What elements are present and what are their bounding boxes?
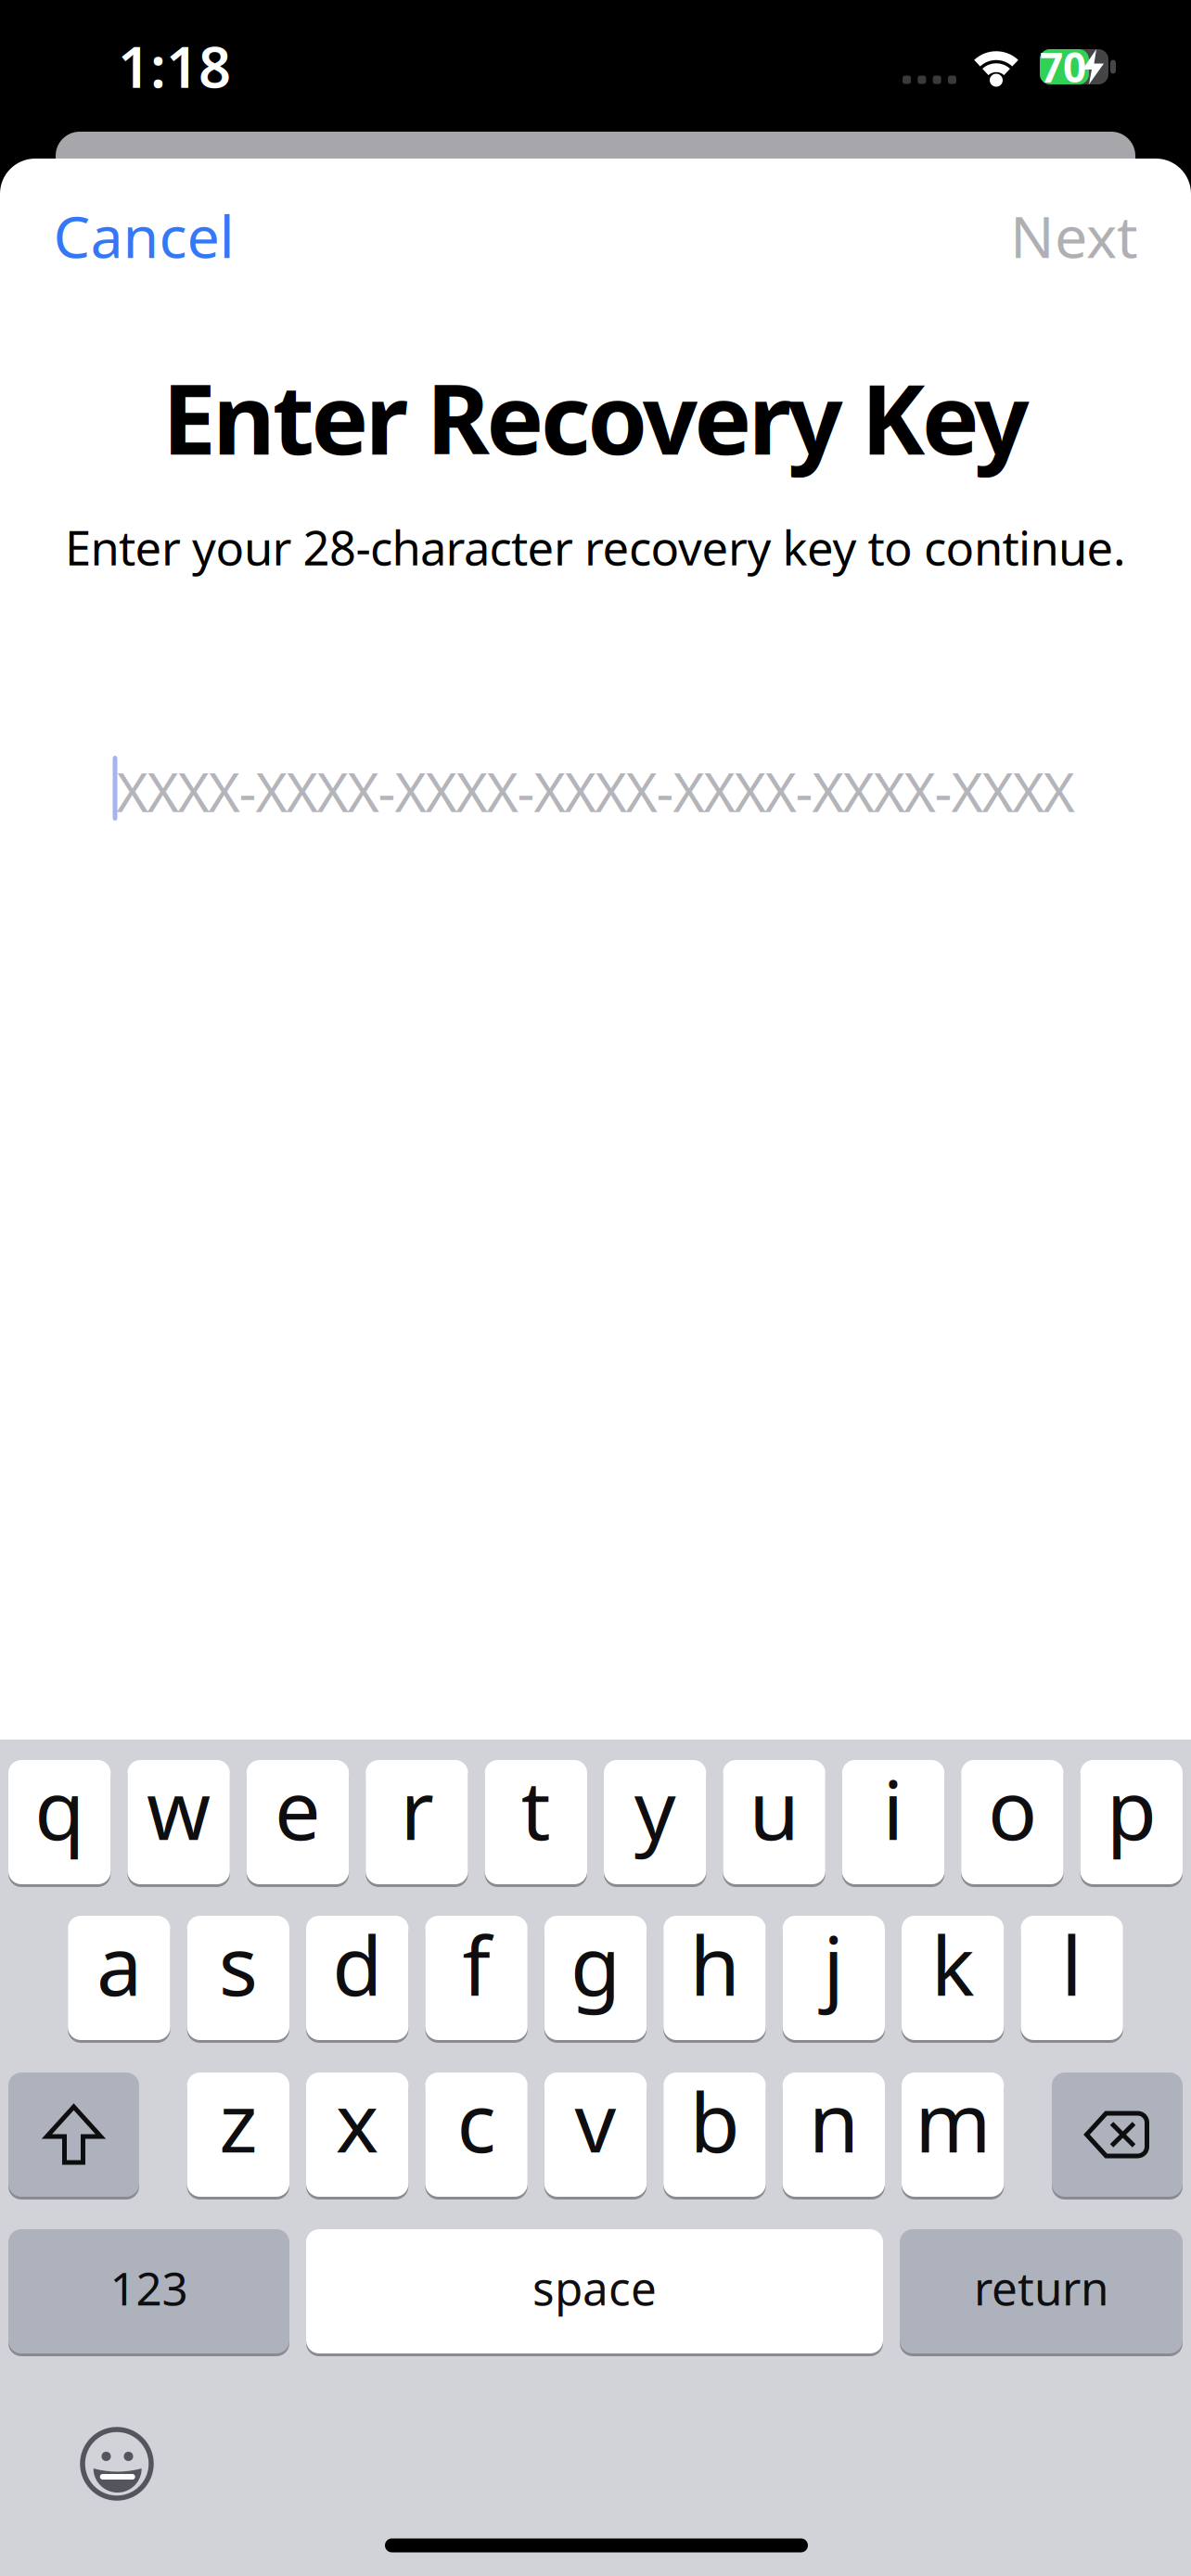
staticText: a	[96, 1910, 142, 2018]
staticText: q	[35, 1754, 85, 1862]
button[interactable]: n	[782, 2072, 885, 2197]
staticText: y	[634, 1754, 676, 1862]
button[interactable]: s	[187, 1916, 289, 2040]
staticText: f	[462, 1910, 490, 2018]
button[interactable]: i	[842, 1760, 944, 1884]
button[interactable]: v	[544, 2072, 647, 2197]
button[interactable]: Emoji	[75, 2422, 159, 2506]
staticText: 123	[110, 2257, 188, 2318]
staticText: i	[883, 1754, 904, 1862]
button[interactable]: g	[544, 1916, 647, 2040]
button[interactable]: e	[247, 1760, 349, 1884]
staticText: x	[336, 2067, 379, 2175]
button[interactable]: space	[306, 2229, 883, 2353]
button[interactable]: b	[663, 2072, 766, 2197]
staticText: 1:18	[118, 28, 231, 104]
button[interactable]: 123	[8, 2229, 289, 2353]
button[interactable]: t	[485, 1760, 587, 1884]
button[interactable]: c	[425, 2072, 528, 2197]
button[interactable]: h	[663, 1916, 766, 2040]
staticText: Next	[1010, 197, 1138, 274]
button[interactable]: Cancel	[53, 197, 234, 274]
staticText: c	[457, 2067, 496, 2175]
staticText: e	[275, 1754, 321, 1862]
staticText: v	[575, 2067, 616, 2175]
staticText: z	[219, 2067, 257, 2175]
button[interactable]: r	[366, 1760, 468, 1884]
staticText: 70	[1040, 40, 1086, 94]
button[interactable]: a	[68, 1916, 170, 2040]
staticText: o	[988, 1754, 1037, 1862]
staticText: Enter Recovery Key	[162, 353, 1029, 481]
staticText: p	[1106, 1754, 1156, 1862]
button[interactable]: q	[8, 1760, 111, 1884]
staticText: return	[974, 2257, 1108, 2318]
button[interactable]: k	[902, 1916, 1004, 2040]
staticText: s	[219, 1910, 258, 2018]
staticText: b	[690, 2067, 740, 2175]
staticText: d	[332, 1910, 382, 2018]
button[interactable]: p	[1080, 1760, 1183, 1884]
button[interactable]: u	[723, 1760, 825, 1884]
button[interactable]: m	[902, 2072, 1004, 2197]
staticText: g	[570, 1910, 621, 2018]
button[interactable]: w	[127, 1760, 230, 1884]
staticText: t	[521, 1754, 551, 1862]
staticText: Enter your 28-character recovery key to …	[65, 516, 1126, 578]
button[interactable]: Next	[1010, 197, 1138, 274]
button[interactable]: z	[187, 2072, 289, 2197]
button[interactable]: Delete	[1052, 2072, 1183, 2197]
staticText: space	[532, 2257, 657, 2318]
button[interactable]: Shift	[8, 2072, 139, 2197]
staticText: n	[809, 2067, 859, 2175]
staticText: u	[749, 1754, 799, 1862]
button[interactable]: y	[604, 1760, 706, 1884]
staticText: k	[931, 1910, 975, 2018]
button[interactable]: Recovery key entry field	[58, 740, 1133, 842]
button[interactable]: d	[306, 1916, 409, 2040]
button[interactable]: f	[425, 1916, 528, 2040]
button[interactable]: l	[1021, 1916, 1123, 2040]
staticText: Cancel	[53, 197, 234, 274]
button[interactable]: return	[900, 2229, 1183, 2353]
staticText: XXXX-XXXX-XXXX-XXXX-XXXX-XXXX-XXXX	[116, 755, 1075, 827]
staticText: r	[400, 1754, 434, 1862]
staticText: h	[690, 1910, 740, 2018]
staticText: w	[147, 1754, 211, 1862]
staticText: j	[823, 1910, 844, 2018]
button[interactable]: x	[306, 2072, 409, 2197]
button[interactable]: j	[782, 1916, 885, 2040]
button[interactable]: o	[961, 1760, 1064, 1884]
staticText: m	[915, 2067, 991, 2175]
staticText: l	[1061, 1910, 1083, 2018]
